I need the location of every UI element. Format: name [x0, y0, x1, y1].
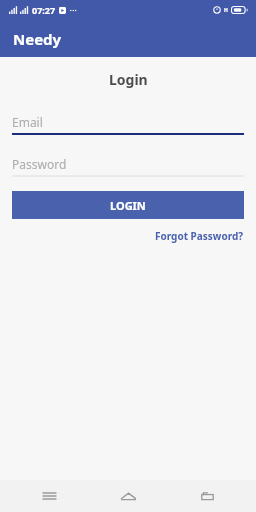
- staticText: Forgot Password?: [155, 229, 244, 243]
- staticText: LOGIN: [110, 198, 146, 213]
- staticText: Needy: [13, 29, 62, 49]
- staticText: Email: [12, 114, 43, 130]
- button[interactable]: Forgot Password?: [145, 226, 256, 246]
- staticText: Login: [109, 70, 148, 89]
- button[interactable]: Email: [0, 110, 256, 136]
- button[interactable]: Back: [177, 480, 237, 512]
- button[interactable]: Home: [98, 480, 158, 512]
- button[interactable]: Recent apps: [19, 480, 79, 512]
- staticText: H: [224, 7, 228, 14]
- staticText: Password: [12, 156, 67, 172]
- button[interactable]: LOGIN: [12, 191, 244, 219]
- button[interactable]: Password: [0, 152, 256, 178]
- staticText: 07:27: [32, 4, 56, 16]
